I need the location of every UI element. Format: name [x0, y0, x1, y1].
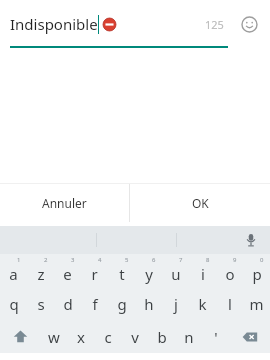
button[interactable]: l: [216, 287, 243, 320]
button[interactable]: Voice input: [240, 229, 262, 251]
button[interactable]: 2: [27, 254, 54, 287]
staticText: g: [117, 294, 127, 314]
staticText: 4: [98, 256, 102, 264]
button[interactable]: Shift: [0, 320, 40, 353]
button[interactable]: 3: [54, 254, 81, 287]
staticText: d: [63, 294, 73, 314]
staticText: 7: [179, 256, 183, 264]
staticText: z: [37, 264, 45, 284]
staticText: u: [171, 264, 181, 284]
staticText: l: [228, 294, 232, 314]
staticText: m: [249, 294, 264, 314]
button[interactable]: Emoji: [234, 9, 264, 39]
button[interactable]: h: [135, 287, 162, 320]
staticText: p: [252, 264, 262, 284]
staticText: v: [131, 327, 139, 347]
staticText: OK: [192, 195, 209, 211]
staticText: 8: [206, 256, 210, 264]
button[interactable]: m: [243, 287, 270, 320]
staticText: c: [104, 327, 112, 347]
staticText: 9: [233, 256, 237, 264]
staticText: k: [198, 294, 207, 314]
button[interactable]: w: [40, 320, 67, 353]
staticText: q: [9, 294, 19, 314]
staticText: e: [63, 264, 72, 284]
staticText: r: [91, 264, 98, 284]
button[interactable]: n: [175, 320, 202, 353]
button[interactable]: g: [108, 287, 135, 320]
button[interactable]: Annuler: [0, 184, 129, 222]
staticText: n: [184, 327, 194, 347]
button[interactable]: Indisponible: [10, 0, 199, 48]
staticText: o: [225, 264, 235, 284]
button[interactable]: 0: [243, 254, 270, 287]
button[interactable]: OK: [130, 184, 270, 222]
staticText: y: [145, 264, 153, 284]
staticText: 2: [44, 256, 48, 264]
staticText: 125: [205, 17, 224, 32]
button[interactable]: v: [121, 320, 148, 353]
button[interactable]: b: [148, 320, 175, 353]
button[interactable]: s: [27, 287, 54, 320]
button[interactable]: Backspace: [229, 320, 270, 353]
staticText: i: [201, 264, 205, 284]
staticText: j: [174, 294, 178, 314]
staticText: f: [92, 294, 98, 314]
button[interactable]: ': [202, 320, 229, 353]
staticText: 0: [260, 256, 264, 264]
staticText: t: [119, 264, 125, 284]
button[interactable]: 4: [81, 254, 108, 287]
button[interactable]: 7: [162, 254, 189, 287]
staticText: 3: [71, 256, 75, 264]
button[interactable]: f: [81, 287, 108, 320]
staticText: s: [37, 294, 45, 314]
button[interactable]: x: [67, 320, 94, 353]
button[interactable]: k: [189, 287, 216, 320]
staticText: b: [157, 327, 167, 347]
staticText: 6: [152, 256, 156, 264]
button[interactable]: 8: [189, 254, 216, 287]
staticText: 5: [125, 256, 129, 264]
button[interactable]: j: [162, 287, 189, 320]
button[interactable]: 9: [216, 254, 243, 287]
staticText: w: [48, 327, 60, 347]
staticText: ': [214, 327, 218, 347]
staticText: h: [144, 294, 154, 314]
staticText: 1: [17, 256, 21, 264]
button[interactable]: d: [54, 287, 81, 320]
staticText: x: [77, 327, 85, 347]
button[interactable]: 6: [135, 254, 162, 287]
staticText: Annuler: [42, 195, 87, 211]
button[interactable]: 1: [0, 254, 27, 287]
button[interactable]: 5: [108, 254, 135, 287]
button[interactable]: q: [0, 287, 27, 320]
staticText: Indisponible: [10, 14, 98, 34]
staticText: a: [9, 264, 18, 284]
button[interactable]: c: [94, 320, 121, 353]
